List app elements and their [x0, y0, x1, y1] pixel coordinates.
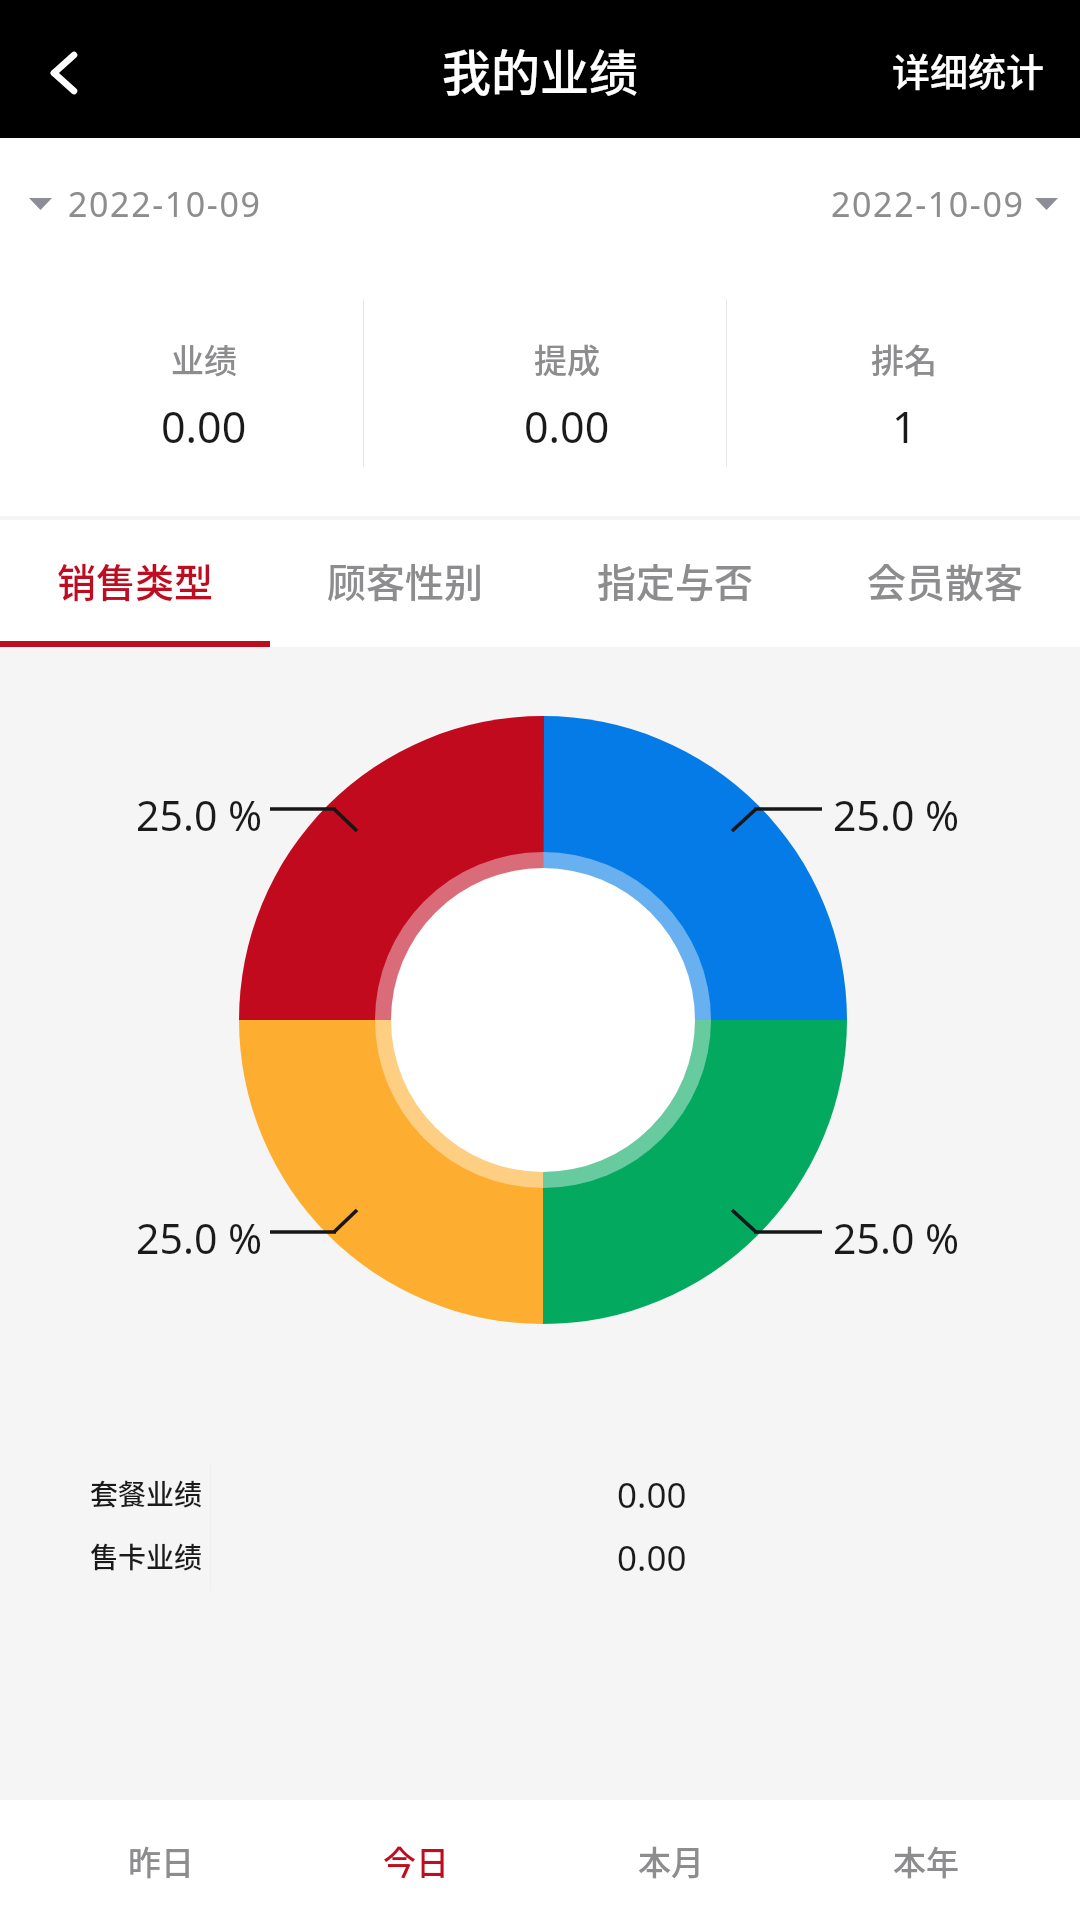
button[interactable]: 排名	[728, 270, 1080, 516]
staticText: 指定与否	[597, 552, 754, 608]
staticText: 顾客性别	[327, 552, 484, 608]
button[interactable]: 业绩	[22, 270, 385, 516]
staticText: 1	[892, 397, 917, 456]
staticText: 会员散客	[867, 552, 1024, 608]
staticText: 25.0 %	[833, 787, 960, 843]
button[interactable]: 本月	[543, 1801, 798, 1920]
button[interactable]: 详细统计	[857, 0, 1080, 138]
button[interactable]: Start date 2022-10-09	[29, 181, 262, 227]
button[interactable]: Back	[0, 0, 120, 138]
staticText: 本月	[638, 1837, 704, 1885]
staticText: 昨日	[128, 1837, 194, 1885]
staticText: 0.00	[617, 1534, 687, 1578]
staticText: 0.00	[617, 1471, 687, 1515]
staticText: 提成	[534, 335, 600, 383]
staticText: 我的业绩	[442, 34, 639, 105]
staticText: 2022-10-09	[831, 181, 1025, 227]
staticText: 套餐业绩	[90, 1473, 203, 1514]
button[interactable]: 本年	[798, 1801, 1053, 1920]
staticText: 销售类型	[57, 552, 214, 608]
staticText: 详细统计	[892, 42, 1045, 97]
button[interactable]: End date 2022-10-09	[831, 181, 1058, 227]
button[interactable]: 昨日	[33, 1801, 288, 1920]
staticText: 0.00	[524, 397, 610, 456]
button[interactable]: 指定与否	[540, 520, 810, 641]
button[interactable]: 套餐业绩	[0, 1471, 1080, 1515]
staticText: 25.0 %	[136, 1210, 263, 1266]
button[interactable]: 售卡业绩	[0, 1534, 1080, 1578]
button[interactable]: 提成	[385, 270, 748, 516]
button[interactable]: 销售类型	[0, 520, 270, 641]
staticText: 25.0 %	[833, 1210, 960, 1266]
staticText: 排名	[871, 335, 937, 383]
button[interactable]: 会员散客	[810, 520, 1080, 641]
staticText: 本年	[893, 1837, 959, 1885]
staticText: 2022-10-09	[68, 181, 262, 227]
button[interactable]: 今日	[288, 1801, 543, 1920]
staticText: 0.00	[161, 397, 247, 456]
staticText: 售卡业绩	[90, 1536, 203, 1577]
staticText: 25.0 %	[136, 787, 263, 843]
staticText: 业绩	[171, 335, 237, 383]
staticText: 今日	[383, 1837, 449, 1885]
button[interactable]: 顾客性别	[270, 520, 540, 641]
